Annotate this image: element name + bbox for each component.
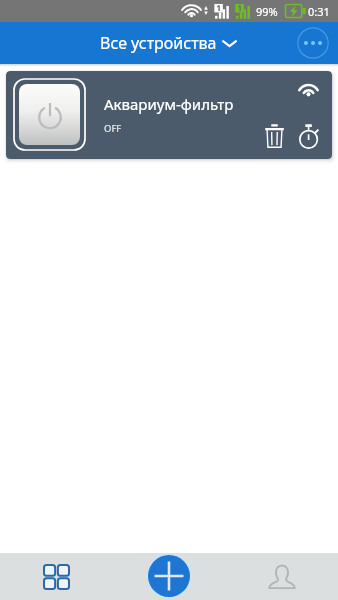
button[interactable]: Add device (146, 553, 192, 599)
button[interactable]: Devices (0, 553, 112, 600)
staticText: OFF (104, 122, 122, 135)
staticText: 0:31 (308, 4, 330, 19)
button[interactable]: Все устройства (100, 32, 238, 54)
button[interactable]: Power toggle (6, 71, 332, 159)
button[interactable]: Timer (296, 123, 322, 149)
button[interactable]: Delete (261, 123, 287, 149)
staticText: Все устройства (100, 32, 217, 54)
button[interactable]: Wi-Fi connected (296, 78, 320, 98)
staticText: Аквариум-фильтр (104, 94, 234, 114)
button[interactable]: Profile (225, 553, 338, 600)
button[interactable]: Power toggle (13, 78, 86, 151)
button[interactable]: More options (297, 27, 329, 59)
staticText: 99% (256, 4, 278, 19)
